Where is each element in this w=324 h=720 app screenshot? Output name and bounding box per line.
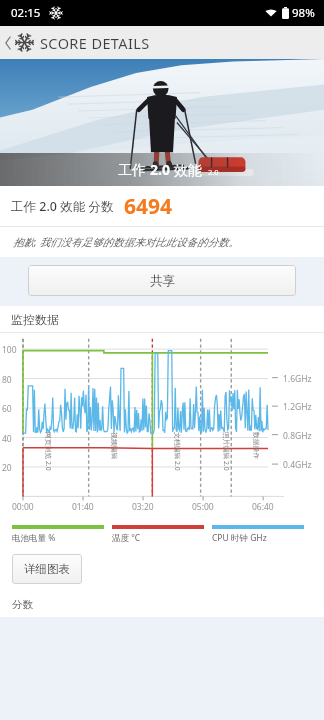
staticText: 20 (2, 462, 12, 474)
staticText: 1.2GHz (283, 401, 312, 413)
staticText: 98% (292, 5, 315, 21)
button[interactable]: 共享 (28, 265, 296, 296)
staticText: 工作 (118, 160, 150, 179)
staticText: 温度 °C (112, 532, 141, 544)
button[interactable]: Back (0, 26, 16, 59)
staticText: SCORE DETAILS (40, 33, 150, 53)
staticText: 分数 (12, 598, 33, 611)
staticText: 40 (2, 433, 12, 445)
staticText: 电池电量 % (12, 532, 56, 544)
staticText: 抱歉, 我们没有足够的数据来对比此设备的分数。 (13, 235, 239, 249)
staticText: 02:15 (11, 5, 41, 21)
staticText: 2.0 (150, 160, 170, 179)
staticText: 视频编辑 (110, 432, 119, 460)
staticText: 共享 (150, 273, 175, 289)
button[interactable]: 详细图表 (12, 554, 82, 584)
staticText: 工作 2.0 效能 分数 (11, 198, 114, 215)
staticText: 网页浏览 2.0 (44, 432, 53, 471)
staticText: 1.6GHz (283, 373, 312, 385)
staticText: 监控数据 (11, 312, 59, 327)
staticText: 01:40 (72, 501, 94, 513)
staticText: 照片编辑 2.0 (222, 432, 231, 471)
staticText: 文档编辑 2.0 (173, 432, 182, 471)
staticText: 2.0 (208, 167, 219, 177)
staticText: 0.8GHz (283, 430, 312, 442)
staticText: 数据操作 (252, 432, 261, 460)
staticText: CPU 时钟 GHz (212, 532, 267, 544)
staticText: 60 (2, 403, 12, 415)
staticText: 05:00 (192, 501, 214, 513)
staticText: 0.4GHz (283, 459, 312, 471)
staticText: 03:20 (132, 501, 154, 513)
staticText: 80 (2, 374, 12, 386)
staticText: 100 (2, 344, 17, 356)
staticText: 详细图表 (24, 562, 70, 576)
staticText: 06:40 (252, 501, 274, 513)
staticText: 00:00 (12, 501, 34, 513)
staticText: 效能 (170, 160, 202, 179)
staticText: 6494 (124, 192, 173, 221)
